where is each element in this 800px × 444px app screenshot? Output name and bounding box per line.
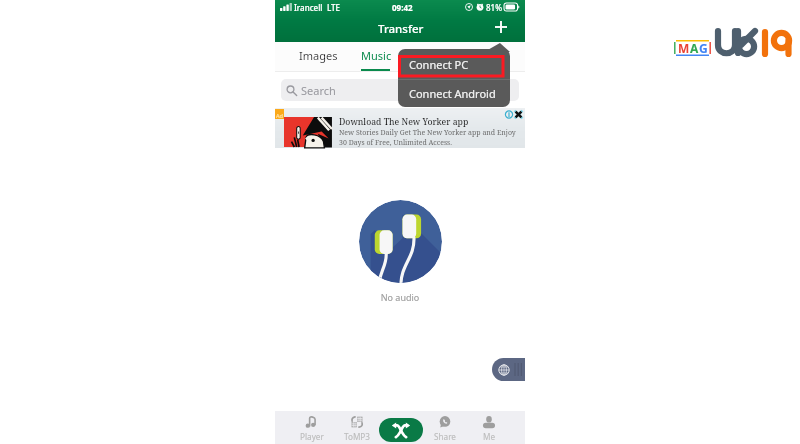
button[interactable]: Me — [467, 411, 511, 444]
button[interactable]: Language — [492, 358, 525, 381]
staticText: Connect PC — [409, 57, 469, 72]
staticText: Ad — [276, 112, 283, 119]
staticText: Music — [361, 48, 392, 63]
button[interactable]: ToMP3 — [334, 411, 379, 444]
staticText: A — [690, 40, 699, 56]
staticText: 30 Days of Free, Unlimited Access. — [339, 138, 453, 148]
button[interactable]: Images — [289, 42, 348, 70]
staticText: New Stories Daily Get The New Yorker app… — [339, 128, 516, 138]
staticText: Download The New Yorker app — [339, 116, 469, 128]
staticText: Share — [434, 431, 456, 442]
staticText: G — [699, 40, 708, 56]
button[interactable]: Music — [348, 42, 404, 70]
button[interactable]: Player — [289, 411, 334, 444]
button[interactable]: Add — [488, 16, 513, 38]
staticText: Player — [300, 431, 324, 442]
staticText: 09:42 — [392, 2, 413, 13]
button[interactable]: Search — [281, 79, 519, 101]
button[interactable]: Share — [423, 411, 467, 444]
staticText: Transfer — [378, 21, 424, 37]
button[interactable]: Connect PC — [398, 49, 510, 79]
staticText: Me — [483, 431, 496, 442]
staticText: M — [678, 40, 690, 56]
button[interactable]: Transfer — [379, 418, 423, 442]
staticText: Search — [301, 83, 336, 98]
staticText: Irancell — [294, 2, 323, 13]
staticText: LTE — [327, 2, 341, 13]
staticText: ToMP3 — [344, 431, 370, 442]
staticText: Connect Android — [409, 86, 496, 101]
staticText: No audio — [275, 291, 525, 303]
button[interactable]: Connect Android — [398, 80, 510, 107]
staticText: 81% — [486, 2, 502, 13]
staticText: Images — [299, 48, 338, 63]
button[interactable]: 19kala MAG watermark — [674, 40, 711, 56]
